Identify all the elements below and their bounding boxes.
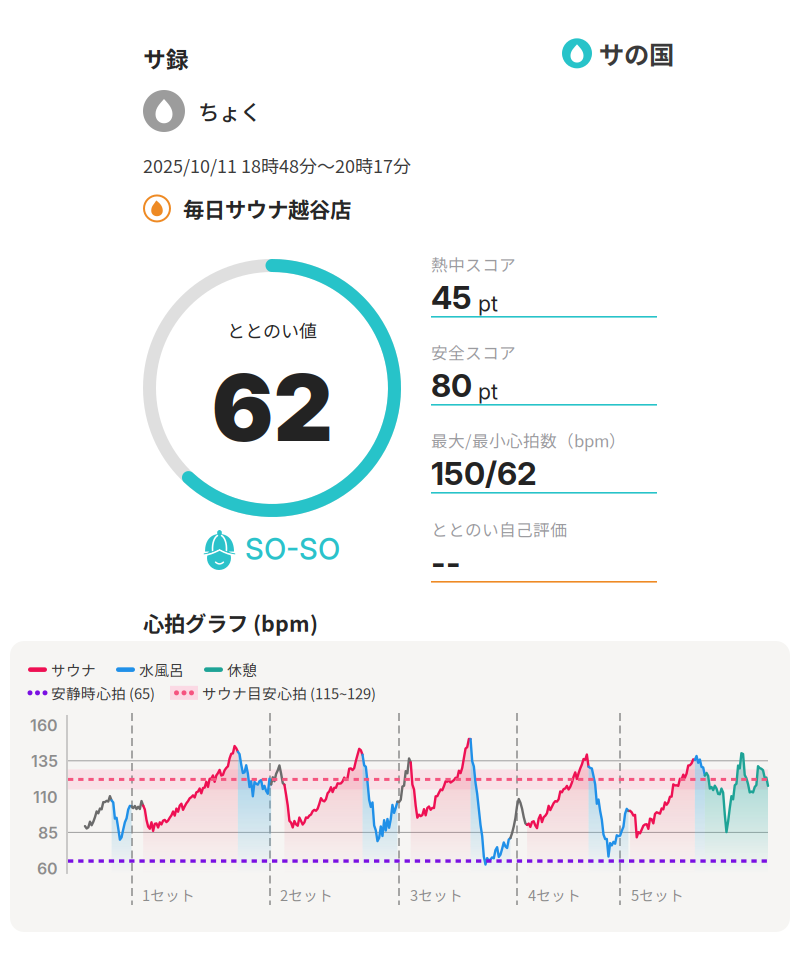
staticText: SO-SO [245,531,340,567]
staticText: 水風呂 [139,659,184,680]
staticText: 安全スコア [431,340,516,364]
staticText: 135 [31,752,58,771]
button[interactable]: SO-SO [203,528,340,570]
staticText: 安静時心拍 (65) [51,682,155,703]
staticText: 62 [211,352,332,463]
staticText: 60 [37,859,58,878]
staticText: 熱中スコア [431,252,516,276]
button[interactable]: ちょく [143,90,261,132]
staticText: 150/62 [431,454,537,493]
staticText: pt [472,379,498,405]
staticText: 160 [30,716,58,735]
staticText: 1セット [142,884,195,905]
staticText: ちょく [198,96,261,126]
staticText: 85 [38,823,58,843]
staticText: 3セット [410,884,463,905]
staticText: 心拍グラフ (bpm) [143,607,318,638]
staticText: 4セット [528,884,581,905]
staticText: サウナ目安心拍 (115~129) [202,682,376,703]
staticText: ととのい値 [227,317,317,343]
staticText: 最大/最小心拍数（bpm） [431,428,626,452]
staticText: 毎日サウナ越谷店 [183,193,351,224]
staticText: サの国 [599,35,674,72]
staticText: 休憩 [227,659,257,680]
staticText: 2セット [280,884,333,905]
staticText: ととのい自己評価 [431,517,567,541]
staticText: サウナ [51,659,96,680]
staticText: 5セット [631,884,684,905]
staticText: -- [431,543,461,582]
staticText: 2025/10/11 18時48分〜20時17分 [143,152,411,178]
staticText: 110 [33,787,58,807]
staticText: 80 [431,366,472,405]
staticText: pt [472,291,498,317]
button[interactable]: 毎日サウナ越谷店 [143,193,351,224]
staticText: サ録 [143,42,189,75]
button[interactable]: サの国 [562,35,674,72]
staticText: 45 [431,278,472,317]
